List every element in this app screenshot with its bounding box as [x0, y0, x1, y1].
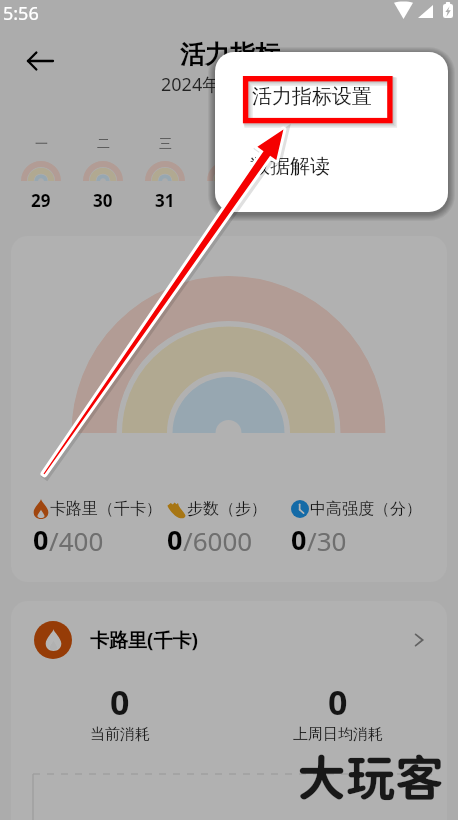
- button[interactable]: 四: [196, 130, 258, 212]
- staticText: 0: [291, 521, 307, 558]
- staticText: 30: [93, 189, 113, 212]
- staticText: /30: [307, 523, 347, 558]
- button[interactable]: 数据解读: [215, 141, 448, 191]
- staticText: 0: [33, 521, 49, 558]
- staticText: 卡路里（千卡）: [50, 499, 162, 519]
- staticText: 0: [328, 679, 348, 725]
- staticText: /6000: [183, 523, 253, 558]
- button[interactable]: 步数（步）: [167, 499, 267, 558]
- button[interactable]: 二: [72, 130, 134, 212]
- staticText: 步数（步）: [187, 499, 267, 519]
- staticText: 0: [110, 679, 130, 725]
- staticText: 中高强度（分）: [310, 499, 422, 519]
- staticText: 29: [31, 189, 51, 212]
- staticText: 上周日均消耗: [293, 725, 383, 744]
- staticText: 31: [155, 189, 175, 212]
- button[interactable]: 五: [258, 130, 320, 212]
- staticText: /400: [49, 523, 104, 558]
- staticText: 当前消耗: [90, 725, 150, 744]
- staticText: 大玩客: [297, 748, 445, 806]
- button[interactable]: 三: [134, 130, 196, 212]
- button[interactable]: 一: [10, 130, 72, 212]
- staticText: 三: [159, 135, 172, 151]
- staticText: 活力指标设置: [252, 84, 372, 109]
- button[interactable]: 中高强度（分）: [291, 499, 422, 558]
- staticText: 一: [35, 135, 48, 151]
- staticText: 二: [97, 135, 110, 151]
- other: More: [409, 630, 429, 650]
- staticText: 活力指标: [180, 39, 280, 70]
- staticText: 0: [167, 521, 183, 558]
- staticText: 1: [222, 189, 232, 212]
- button[interactable]: 活力指标设置: [215, 52, 448, 141]
- button[interactable]: Back: [17, 38, 62, 83]
- staticText: 2024年12月31日: [161, 72, 298, 97]
- staticText: 卡路里(千卡): [90, 627, 198, 653]
- staticText: 五: [283, 135, 296, 151]
- button[interactable]: 卡路里（千卡）: [33, 499, 162, 558]
- button[interactable]: 卡路里(千卡): [11, 601, 447, 679]
- staticText: 数据解读: [250, 154, 330, 179]
- button[interactable]: 六: [320, 130, 382, 212]
- staticText: 5:56: [3, 1, 39, 26]
